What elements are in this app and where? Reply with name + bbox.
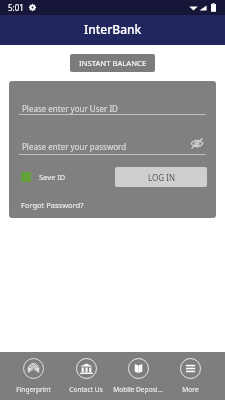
button[interactable]: More (164, 352, 216, 400)
staticText: Contact Us (69, 385, 103, 394)
button[interactable]: Fingerprint (7, 352, 60, 400)
button[interactable]: Forgot Password? (21, 200, 84, 210)
button[interactable]: Mobile Deposi... (112, 352, 164, 400)
button[interactable]: INSTANT BALANCE (70, 54, 155, 72)
staticText: Please enter your password (22, 141, 127, 152)
button[interactable]: Please enter your User ID (19, 103, 207, 115)
button[interactable]: Contact Us (60, 352, 112, 400)
staticText: Please enter your User ID (22, 103, 118, 114)
button[interactable]: Show password (189, 135, 205, 151)
staticText: InterBank (84, 21, 142, 37)
button[interactable]: LOG IN (115, 167, 207, 187)
staticText: Save ID (39, 172, 66, 182)
staticText: Fingerprint (16, 385, 51, 394)
staticText: 5:01 (8, 2, 24, 13)
button[interactable]: Save ID (21, 172, 66, 182)
staticText: More (182, 385, 199, 394)
staticText: INSTANT BALANCE (79, 58, 147, 68)
staticText: LOG IN (148, 172, 175, 183)
staticText: Mobile Deposi... (113, 385, 163, 394)
